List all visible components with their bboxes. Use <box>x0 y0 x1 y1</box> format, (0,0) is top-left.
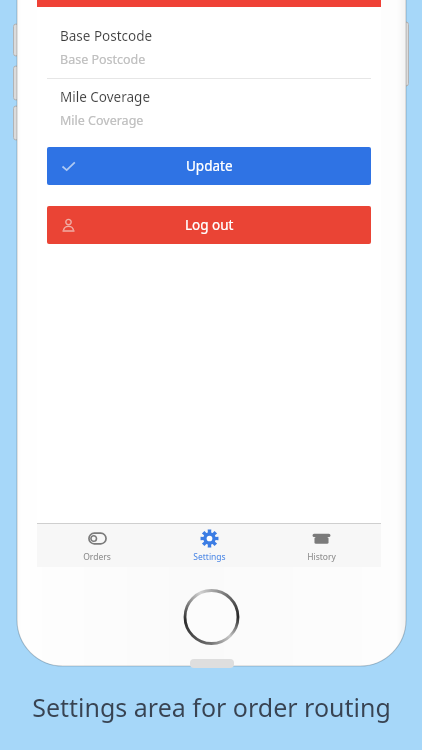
button[interactable]: Settings <box>157 524 261 567</box>
button[interactable]: Base Postcode <box>47 18 371 78</box>
other: Confirm <box>61 159 76 174</box>
button[interactable]: Confirm <box>47 147 371 185</box>
staticText: History <box>307 551 336 562</box>
staticText: Base Postcode <box>60 51 146 68</box>
staticText: Settings area for order routing <box>32 690 391 724</box>
staticText: Settings <box>193 551 226 562</box>
staticText: Update <box>186 157 233 175</box>
button[interactable]: History <box>269 524 373 567</box>
staticText: Log out <box>185 216 234 234</box>
staticText: Mile Coverage <box>60 112 144 129</box>
button[interactable]: Account <box>47 206 371 244</box>
staticText: Mile Coverage <box>60 88 151 106</box>
staticText: Orders <box>83 551 111 562</box>
button[interactable]: Orders <box>45 524 149 567</box>
staticText: Base Postcode <box>60 27 153 45</box>
button[interactable]: Mile Coverage <box>47 79 371 139</box>
other: Account <box>61 218 76 233</box>
